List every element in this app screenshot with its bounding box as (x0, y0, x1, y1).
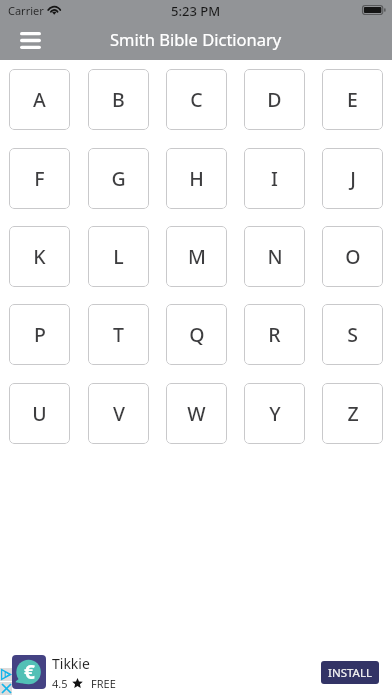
button[interactable]: G (88, 148, 149, 209)
button[interactable]: Tikkie app icon (12, 655, 46, 689)
staticText: P (34, 321, 46, 348)
staticText: € (24, 659, 35, 685)
staticText: INSTALL (328, 665, 372, 681)
button[interactable]: T (88, 304, 149, 365)
button[interactable]: Close ad (0, 682, 12, 695)
button[interactable]: A (9, 69, 70, 130)
staticText: V (113, 400, 125, 427)
button[interactable]: W (166, 383, 227, 444)
button[interactable]: M (166, 226, 227, 287)
staticText: Y (269, 400, 281, 427)
button[interactable]: C (166, 69, 227, 130)
button[interactable]: S (322, 304, 383, 365)
button[interactable]: F (9, 148, 70, 209)
button[interactable]: O (322, 226, 383, 287)
staticText: B (112, 86, 125, 113)
button[interactable]: Tikkie (52, 654, 116, 691)
button[interactable]: P (9, 304, 70, 365)
staticText: A (33, 86, 46, 113)
button[interactable]: E (322, 69, 383, 130)
staticText: Z (347, 400, 359, 427)
button[interactable]: Open navigation menu (8, 21, 52, 60)
button[interactable]: L (88, 226, 149, 287)
button[interactable]: Z (322, 383, 383, 444)
button[interactable]: Y (244, 383, 305, 444)
staticText: Tikkie (52, 654, 90, 673)
button[interactable]: H (166, 148, 227, 209)
button[interactable]: R (244, 304, 305, 365)
staticText: C (190, 86, 203, 113)
staticText: U (32, 400, 47, 427)
button[interactable]: V (88, 383, 149, 444)
button[interactable]: Q (166, 304, 227, 365)
staticText: F (34, 165, 45, 192)
staticText: H (189, 165, 204, 192)
staticText: O (345, 243, 361, 270)
staticText: I (271, 165, 278, 192)
staticText: E (347, 86, 358, 113)
staticText: G (111, 165, 126, 192)
button[interactable]: Why this ad (0, 668, 12, 681)
staticText: 5:23 PM (171, 2, 221, 20)
staticText: M (188, 243, 206, 270)
staticText: FREE (91, 676, 116, 691)
button[interactable]: N (244, 226, 305, 287)
button[interactable]: INSTALL (321, 661, 379, 684)
staticText: 4.5 (52, 676, 68, 691)
button[interactable]: K (9, 226, 70, 287)
staticText: R (268, 321, 281, 348)
staticText: J (350, 165, 356, 192)
button[interactable]: I (244, 148, 305, 209)
staticText: Q (189, 321, 205, 348)
button[interactable]: B (88, 69, 149, 130)
staticText: N (267, 243, 283, 270)
staticText: D (267, 86, 282, 113)
staticText: Carrier (8, 3, 44, 18)
button[interactable]: D (244, 69, 305, 130)
staticText: T (113, 321, 124, 348)
staticText: W (187, 400, 206, 427)
button[interactable]: U (9, 383, 70, 444)
staticText: K (33, 243, 46, 270)
staticText: Smith Bible Dictionary (110, 28, 282, 50)
staticText: S (347, 321, 358, 348)
staticText: L (113, 243, 124, 270)
button[interactable]: J (322, 148, 383, 209)
